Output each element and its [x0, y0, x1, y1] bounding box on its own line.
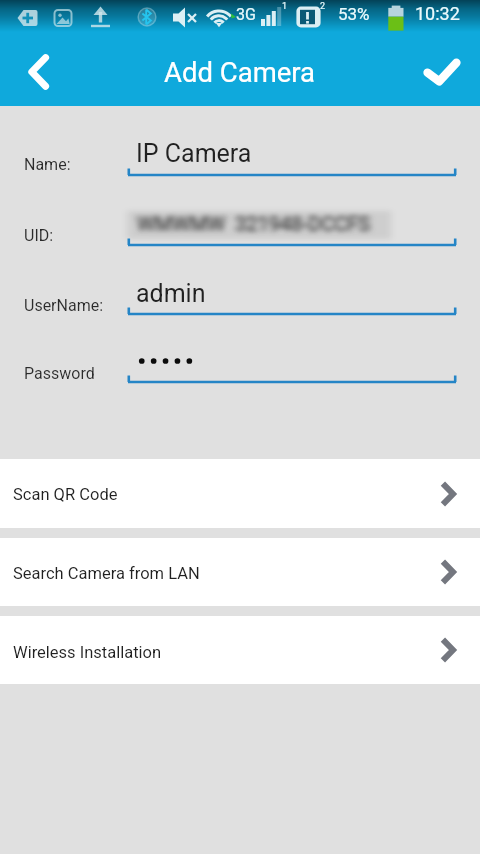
button[interactable]: Scan QR Code — [0, 459, 480, 528]
staticText: Password — [24, 364, 95, 383]
staticText: 53% — [338, 4, 370, 24]
staticText: IP Camera — [136, 139, 252, 168]
staticText: 2 — [320, 1, 326, 12]
button[interactable]: Wireless Installation — [0, 616, 480, 684]
staticText: Wireless Installation — [13, 643, 162, 662]
staticText: 3G — [236, 5, 256, 24]
staticText: admin — [136, 279, 206, 308]
staticText: 10:32 — [415, 3, 460, 24]
button[interactable]: Back — [0, 32, 72, 106]
button[interactable]: Save — [408, 32, 480, 106]
staticText: Search Camera from LAN — [13, 564, 200, 583]
button[interactable]: Search Camera from LAN — [0, 538, 480, 606]
staticText: Name: — [24, 155, 71, 174]
staticText: Scan QR Code — [13, 485, 118, 504]
staticText: 1 — [282, 1, 288, 12]
staticText: WMWMW 321948-DCCFS — [137, 212, 371, 235]
staticText: UID: — [24, 226, 54, 245]
staticText: UserName: — [24, 296, 104, 315]
staticText: Add Camera — [164, 56, 316, 88]
